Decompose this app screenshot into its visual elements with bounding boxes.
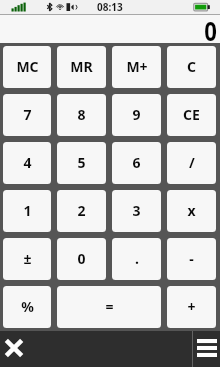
staticText: MR	[70, 57, 93, 76]
staticText: 7	[23, 105, 32, 124]
staticText: ±	[23, 249, 32, 268]
button[interactable]: ±	[3, 238, 51, 280]
staticText: 6	[132, 153, 141, 172]
staticText: 0	[204, 13, 217, 41]
staticText: %	[21, 297, 34, 316]
button[interactable]: MC	[3, 46, 51, 88]
button[interactable]: /	[167, 142, 216, 184]
button[interactable]: Menu	[193, 331, 220, 367]
button[interactable]: .	[112, 238, 161, 280]
staticText: 0	[77, 249, 86, 268]
staticText: .	[135, 249, 139, 268]
staticText: 5	[77, 153, 86, 172]
button[interactable]: 6	[112, 142, 161, 184]
staticText: 1	[23, 201, 32, 220]
button[interactable]: -	[167, 238, 216, 280]
button[interactable]: Close	[0, 331, 28, 367]
staticText: x	[187, 201, 196, 220]
staticText: C	[187, 57, 196, 76]
staticText: M+	[126, 57, 148, 76]
button[interactable]: C	[167, 46, 216, 88]
button[interactable]: +	[167, 286, 216, 328]
button[interactable]: 5	[57, 142, 106, 184]
button[interactable]: 1	[3, 190, 51, 232]
button[interactable]: x	[167, 190, 216, 232]
button[interactable]: 9	[112, 94, 161, 136]
button[interactable]: %	[3, 286, 51, 328]
button[interactable]: 3	[112, 190, 161, 232]
staticText: MC	[16, 57, 39, 76]
button[interactable]: 0	[57, 238, 106, 280]
staticText: 8	[77, 105, 86, 124]
staticText: +	[187, 297, 196, 316]
staticText: -	[189, 249, 194, 268]
staticText: /	[189, 153, 195, 172]
staticText: CE	[183, 105, 200, 124]
staticText: 2	[77, 201, 86, 220]
button[interactable]: =	[57, 286, 161, 328]
button[interactable]: 2	[57, 190, 106, 232]
staticText: 3	[132, 201, 141, 220]
button[interactable]: M+	[112, 46, 161, 88]
staticText: 08:13	[97, 0, 123, 14]
staticText: =	[105, 297, 114, 316]
button[interactable]: 8	[57, 94, 106, 136]
staticText: 9	[132, 105, 141, 124]
button[interactable]: 4	[3, 142, 51, 184]
staticText: 4	[23, 153, 32, 172]
button[interactable]: CE	[167, 94, 216, 136]
button[interactable]: 7	[3, 94, 51, 136]
button[interactable]: MR	[57, 46, 106, 88]
